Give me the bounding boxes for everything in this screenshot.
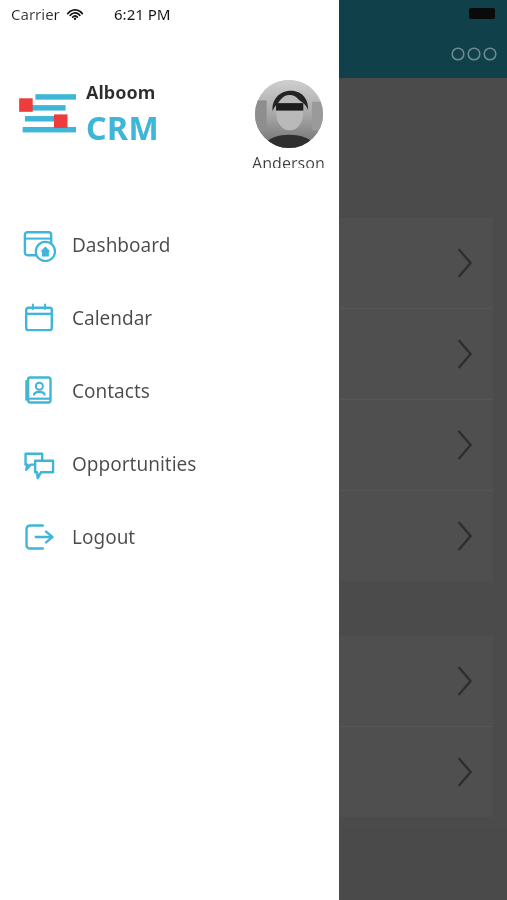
staticText: Calendar: [72, 305, 153, 331]
staticText: 6:21 PM: [114, 4, 171, 24]
staticText: Logout: [72, 524, 136, 550]
button[interactable]: [14, 400, 493, 490]
button[interactable]: [14, 636, 493, 726]
button[interactable]: More options: [451, 47, 497, 61]
staticText: Dashboard: [72, 232, 171, 258]
button[interactable]: Anderson: [252, 80, 325, 168]
button[interactable]: Dashboard: [0, 208, 339, 281]
button[interactable]: Opportunities: [0, 427, 339, 500]
button[interactable]: Calendar: [0, 281, 339, 354]
staticText: Opportunities: [72, 451, 197, 477]
button[interactable]: [14, 309, 493, 399]
staticText: Alboom: [86, 80, 156, 105]
button[interactable]: [14, 218, 493, 308]
staticText: CRM: [86, 106, 160, 150]
button[interactable]: Logout: [0, 500, 339, 573]
staticText: Contacts: [72, 378, 150, 404]
button[interactable]: [14, 727, 493, 817]
staticText: Anderson: [252, 152, 325, 168]
staticText: Carrier: [11, 4, 60, 24]
button[interactable]: [14, 491, 493, 581]
button[interactable]: Contacts: [0, 354, 339, 427]
